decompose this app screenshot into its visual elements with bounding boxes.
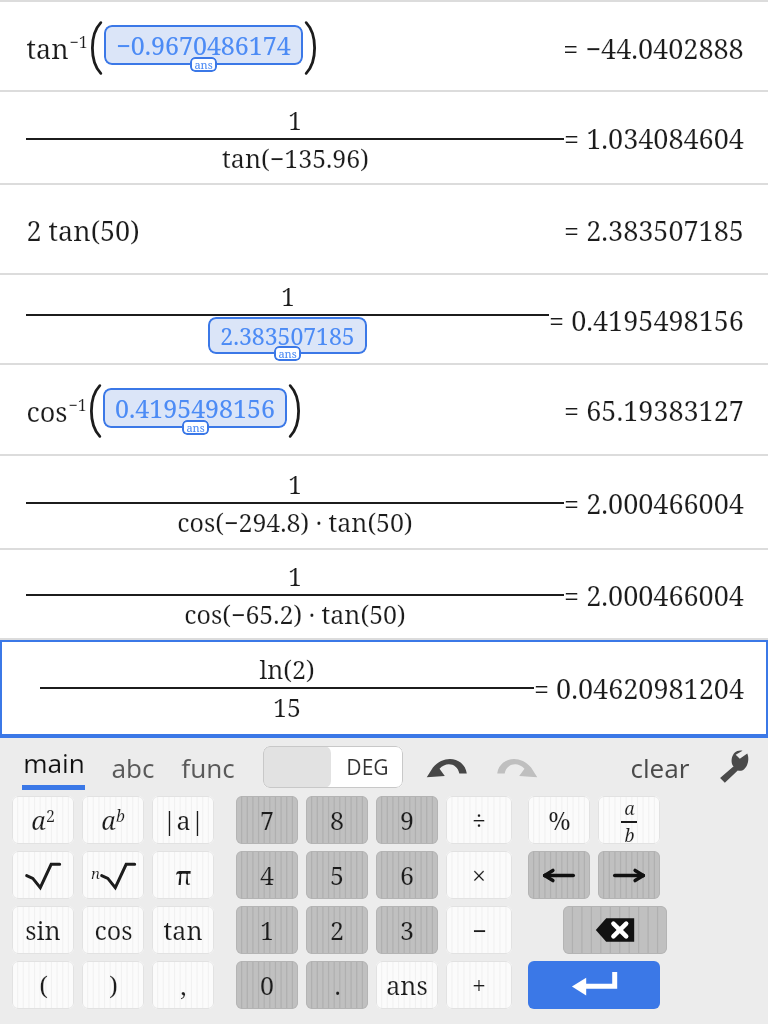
button[interactable]: ans [376, 961, 438, 1009]
staticText: cos(−65.2) · tan(50) [184, 597, 406, 631]
staticText: cos(−294.8) · tan(50) [177, 505, 413, 539]
button[interactable]: cursor left [528, 851, 590, 899]
button[interactable]: cos [82, 906, 144, 954]
button[interactable]: fraction a over b [598, 796, 660, 844]
staticText: |a| [162, 803, 205, 837]
button[interactable]: 1 [0, 275, 768, 365]
staticText: × [472, 858, 486, 892]
staticText: = 1.034084604 [564, 120, 744, 157]
staticText: π [175, 858, 192, 892]
staticText: = 0.04620981204 [534, 670, 744, 707]
button[interactable]: abc [111, 750, 155, 785]
button[interactable]: ( [12, 961, 74, 1009]
button[interactable]: cursor right [598, 851, 660, 899]
staticText: 2 tan(50) [26, 212, 140, 249]
button[interactable]: pi [152, 851, 214, 899]
button[interactable]: . [306, 961, 368, 1009]
button[interactable]: 2 tan(50) [0, 185, 768, 275]
staticText: 1 [260, 913, 274, 947]
staticText: ) [109, 968, 118, 1002]
staticText: − [472, 913, 487, 947]
button[interactable]: 3 [376, 906, 438, 954]
staticText: tan [163, 913, 203, 947]
staticText: 15 [273, 690, 301, 724]
button[interactable]: plus [446, 961, 512, 1009]
button[interactable]: minus [446, 906, 512, 954]
button[interactable]: clear [630, 750, 690, 785]
staticText: = 2.383507185 [564, 212, 744, 249]
button[interactable]: 2 [306, 906, 368, 954]
button[interactable]: 1 [0, 456, 768, 550]
staticText: n [91, 863, 100, 883]
button[interactable]: nth root [82, 851, 144, 899]
staticText: 0.4195498156 [115, 391, 275, 425]
button[interactable]: Redo [495, 752, 539, 782]
button[interactable]: 5 [306, 851, 368, 899]
staticText: = 0.4195498156 [549, 302, 744, 339]
staticText: 8 [330, 803, 344, 837]
button[interactable]: ln(2) [0, 640, 768, 736]
button[interactable]: divide [446, 796, 512, 844]
staticText: % [548, 803, 571, 837]
button[interactable]: , [152, 961, 214, 1009]
staticText: 7 [260, 803, 274, 837]
button[interactable]: 7 [236, 796, 298, 844]
staticText: 6 [400, 858, 414, 892]
button[interactable]: 9 [376, 796, 438, 844]
button[interactable]: 8 [306, 796, 368, 844]
staticText: a [624, 796, 635, 821]
staticText: 0 [260, 968, 274, 1002]
staticText: a [31, 803, 46, 837]
staticText: DEG [346, 753, 389, 782]
button[interactable]: func [181, 750, 235, 785]
staticText: ln(2) [259, 652, 315, 686]
button[interactable]: 4 [236, 851, 298, 899]
button[interactable]: Enter [528, 961, 660, 1009]
staticText: sin [25, 913, 61, 947]
button[interactable]: Settings [716, 750, 750, 784]
staticText: −0.9670486174 [116, 28, 291, 62]
button[interactable]: −0.9670486174 [104, 25, 303, 72]
staticText: 2 [46, 805, 55, 827]
button[interactable]: absolute value [152, 796, 214, 844]
staticText: main [23, 745, 85, 780]
button[interactable]: backspace [563, 906, 667, 954]
button[interactable]: 1 [236, 906, 298, 954]
staticText: b [116, 805, 125, 827]
staticText: −1 [69, 31, 88, 53]
staticText: tan [26, 30, 69, 67]
button[interactable]: multiply [446, 851, 512, 899]
button[interactable]: 1 [0, 92, 768, 185]
staticText: 1 [288, 103, 302, 137]
staticText: ( [39, 968, 48, 1002]
button[interactable]: 6 [376, 851, 438, 899]
button[interactable]: sin [12, 906, 74, 954]
button[interactable]: a squared [12, 796, 74, 844]
button[interactable]: 0.4195498156 [103, 388, 287, 435]
button[interactable]: a to the power b [82, 796, 144, 844]
staticText: 4 [260, 858, 274, 892]
button[interactable]: cos [0, 365, 768, 456]
staticText: ans [386, 968, 428, 1002]
button[interactable]: Undo [425, 752, 469, 782]
staticText: , [180, 968, 187, 1002]
staticText: ans [186, 420, 205, 435]
staticText: ans [194, 57, 213, 72]
button[interactable]: percent [528, 796, 590, 844]
button[interactable]: Degrees / radians toggle [263, 746, 403, 788]
staticText: ÷ [472, 803, 486, 837]
button[interactable]: square root [12, 851, 74, 899]
staticText: −1 [68, 394, 87, 416]
button[interactable]: tan [152, 906, 214, 954]
button[interactable]: 0 [236, 961, 298, 1009]
button[interactable]: ) [82, 961, 144, 1009]
staticText: 2.383507185 [220, 320, 355, 351]
button[interactable]: tan [0, 4, 768, 92]
button[interactable]: main [18, 745, 89, 790]
staticText: . [334, 968, 341, 1002]
button[interactable]: 1 [0, 550, 768, 640]
staticText: ans [278, 346, 297, 361]
staticText: cos [26, 393, 68, 430]
staticText: a [101, 803, 116, 837]
button[interactable]: 2.383507185 [208, 317, 367, 361]
